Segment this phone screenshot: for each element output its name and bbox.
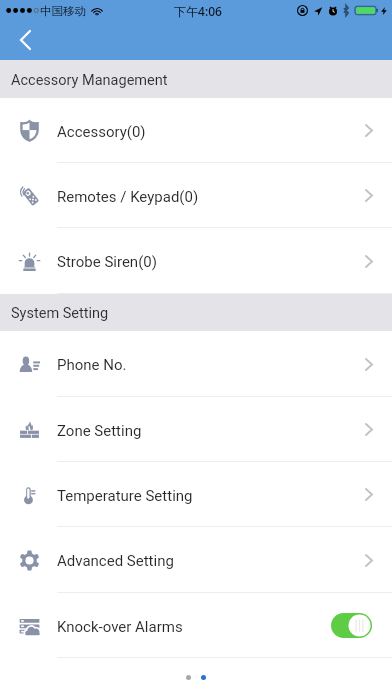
staticText: Remotes / Keypad(0) <box>57 188 365 206</box>
staticText: Accessory(0) <box>57 123 365 141</box>
button[interactable]: Back <box>7 22 43 58</box>
staticText: System Setting <box>11 305 109 322</box>
staticText: Phone No. <box>57 356 365 374</box>
button[interactable]: Accessory(0) <box>0 98 392 163</box>
button[interactable]: Zone Setting <box>0 397 392 462</box>
button[interactable]: Temperature Setting <box>0 462 392 527</box>
staticText: Advanced Setting <box>57 552 365 570</box>
button[interactable]: Remotes / Keypad(0) <box>0 163 392 228</box>
button[interactable]: Strobe Siren(0) <box>0 228 392 294</box>
button[interactable]: Toggle Knock-over Alarms <box>331 613 372 638</box>
button[interactable]: Phone No. <box>0 331 392 397</box>
staticText: Temperature Setting <box>57 487 365 505</box>
staticText: Knock-over Alarms <box>57 618 331 636</box>
button[interactable]: Knock-over Alarms <box>0 593 392 658</box>
staticText: Accessory Management <box>11 72 168 89</box>
button[interactable]: Advanced Setting <box>0 527 392 593</box>
staticText: Zone Setting <box>57 422 365 440</box>
staticText: 中国移动 <box>40 4 86 18</box>
staticText: Strobe Siren(0) <box>57 253 365 271</box>
staticText: 下午4:06 <box>2 3 392 19</box>
